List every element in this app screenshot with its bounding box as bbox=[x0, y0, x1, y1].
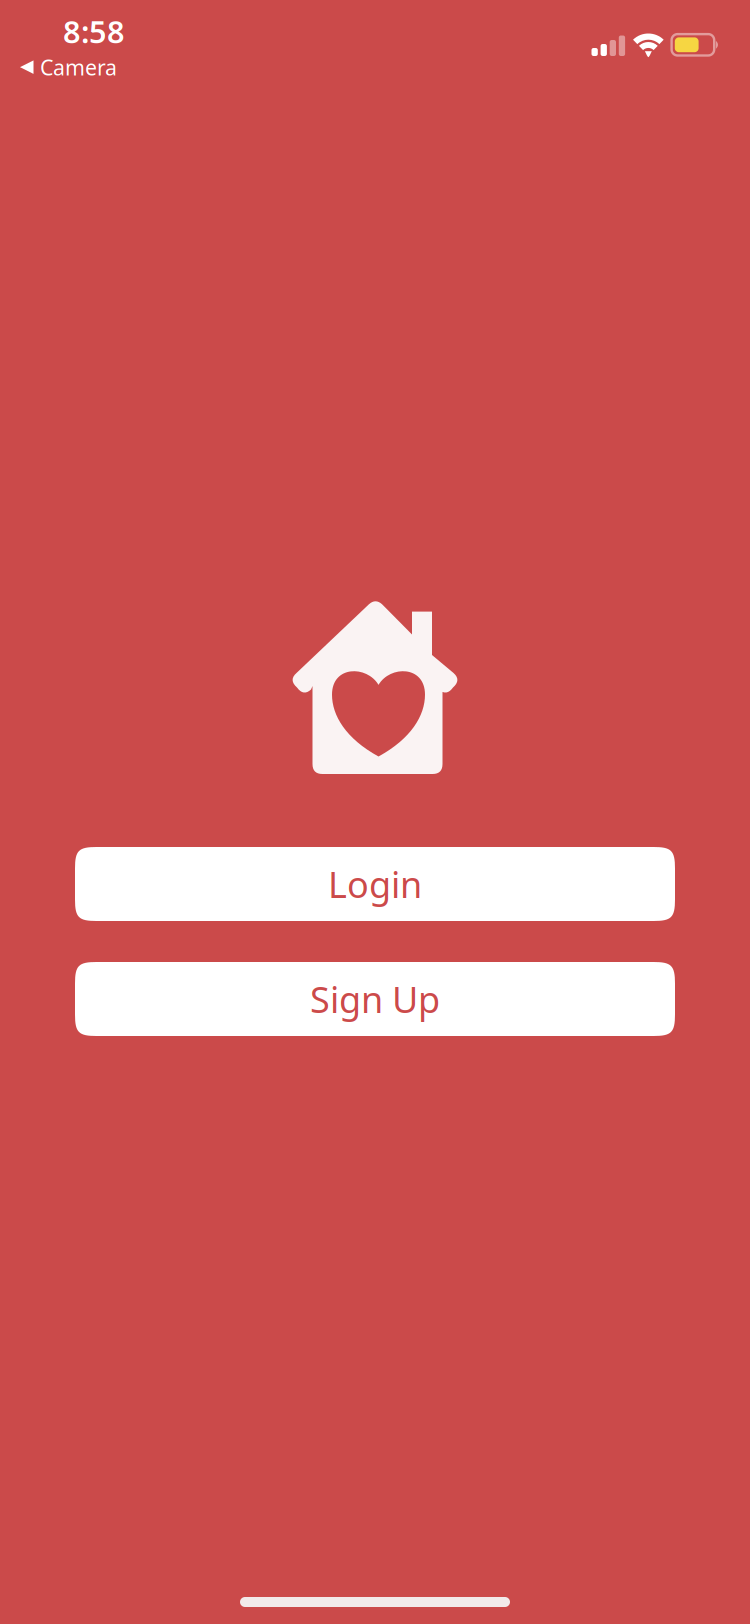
button[interactable]: Back to Camera bbox=[20, 50, 123, 84]
staticText: Login bbox=[328, 860, 422, 908]
staticText: 8:58 bbox=[63, 11, 125, 52]
staticText: Sign Up bbox=[310, 975, 440, 1023]
button[interactable]: Sign Up bbox=[75, 962, 675, 1036]
button[interactable]: Login bbox=[75, 847, 675, 921]
staticText: Camera bbox=[40, 53, 117, 81]
